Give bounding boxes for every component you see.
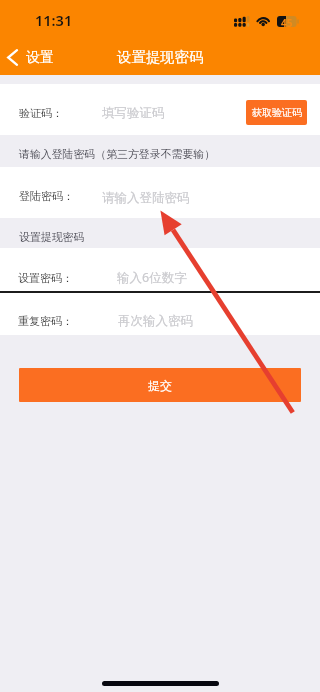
other: Back	[7, 49, 18, 66]
staticText: 请输入登陆密码	[102, 190, 190, 206]
button[interactable]: 提交	[19, 368, 301, 402]
staticText: 重复密码：	[18, 314, 73, 328]
button[interactable]: 设置密码：	[0, 248, 320, 291]
staticText: 11:31	[35, 10, 73, 30]
button[interactable]: 重复密码：	[0, 293, 320, 335]
button[interactable]: 验证码：	[0, 84, 320, 135]
staticText: 登陆密码：	[19, 189, 74, 203]
staticText: 获取验证码	[252, 106, 302, 119]
staticText: 设置提现密码	[117, 48, 204, 66]
staticText: 填写验证码	[102, 105, 165, 121]
staticText: 输入6位数字	[117, 269, 187, 286]
staticText: 设置提现密码	[19, 231, 85, 245]
staticText: 请输入登陆密码（第三方登录不需要输）	[19, 148, 216, 162]
staticText: 再次输入密码	[118, 313, 193, 329]
staticText: 验证码：	[19, 106, 63, 120]
button[interactable]: 登陆密码：	[0, 167, 320, 218]
button[interactable]: Back	[0, 42, 64, 72]
button[interactable]: 获取验证码	[246, 100, 307, 125]
staticText: 设置密码：	[18, 271, 73, 285]
staticText: 45	[281, 16, 293, 27]
staticText: 提交	[148, 378, 172, 393]
staticText: 设置	[26, 49, 54, 67]
